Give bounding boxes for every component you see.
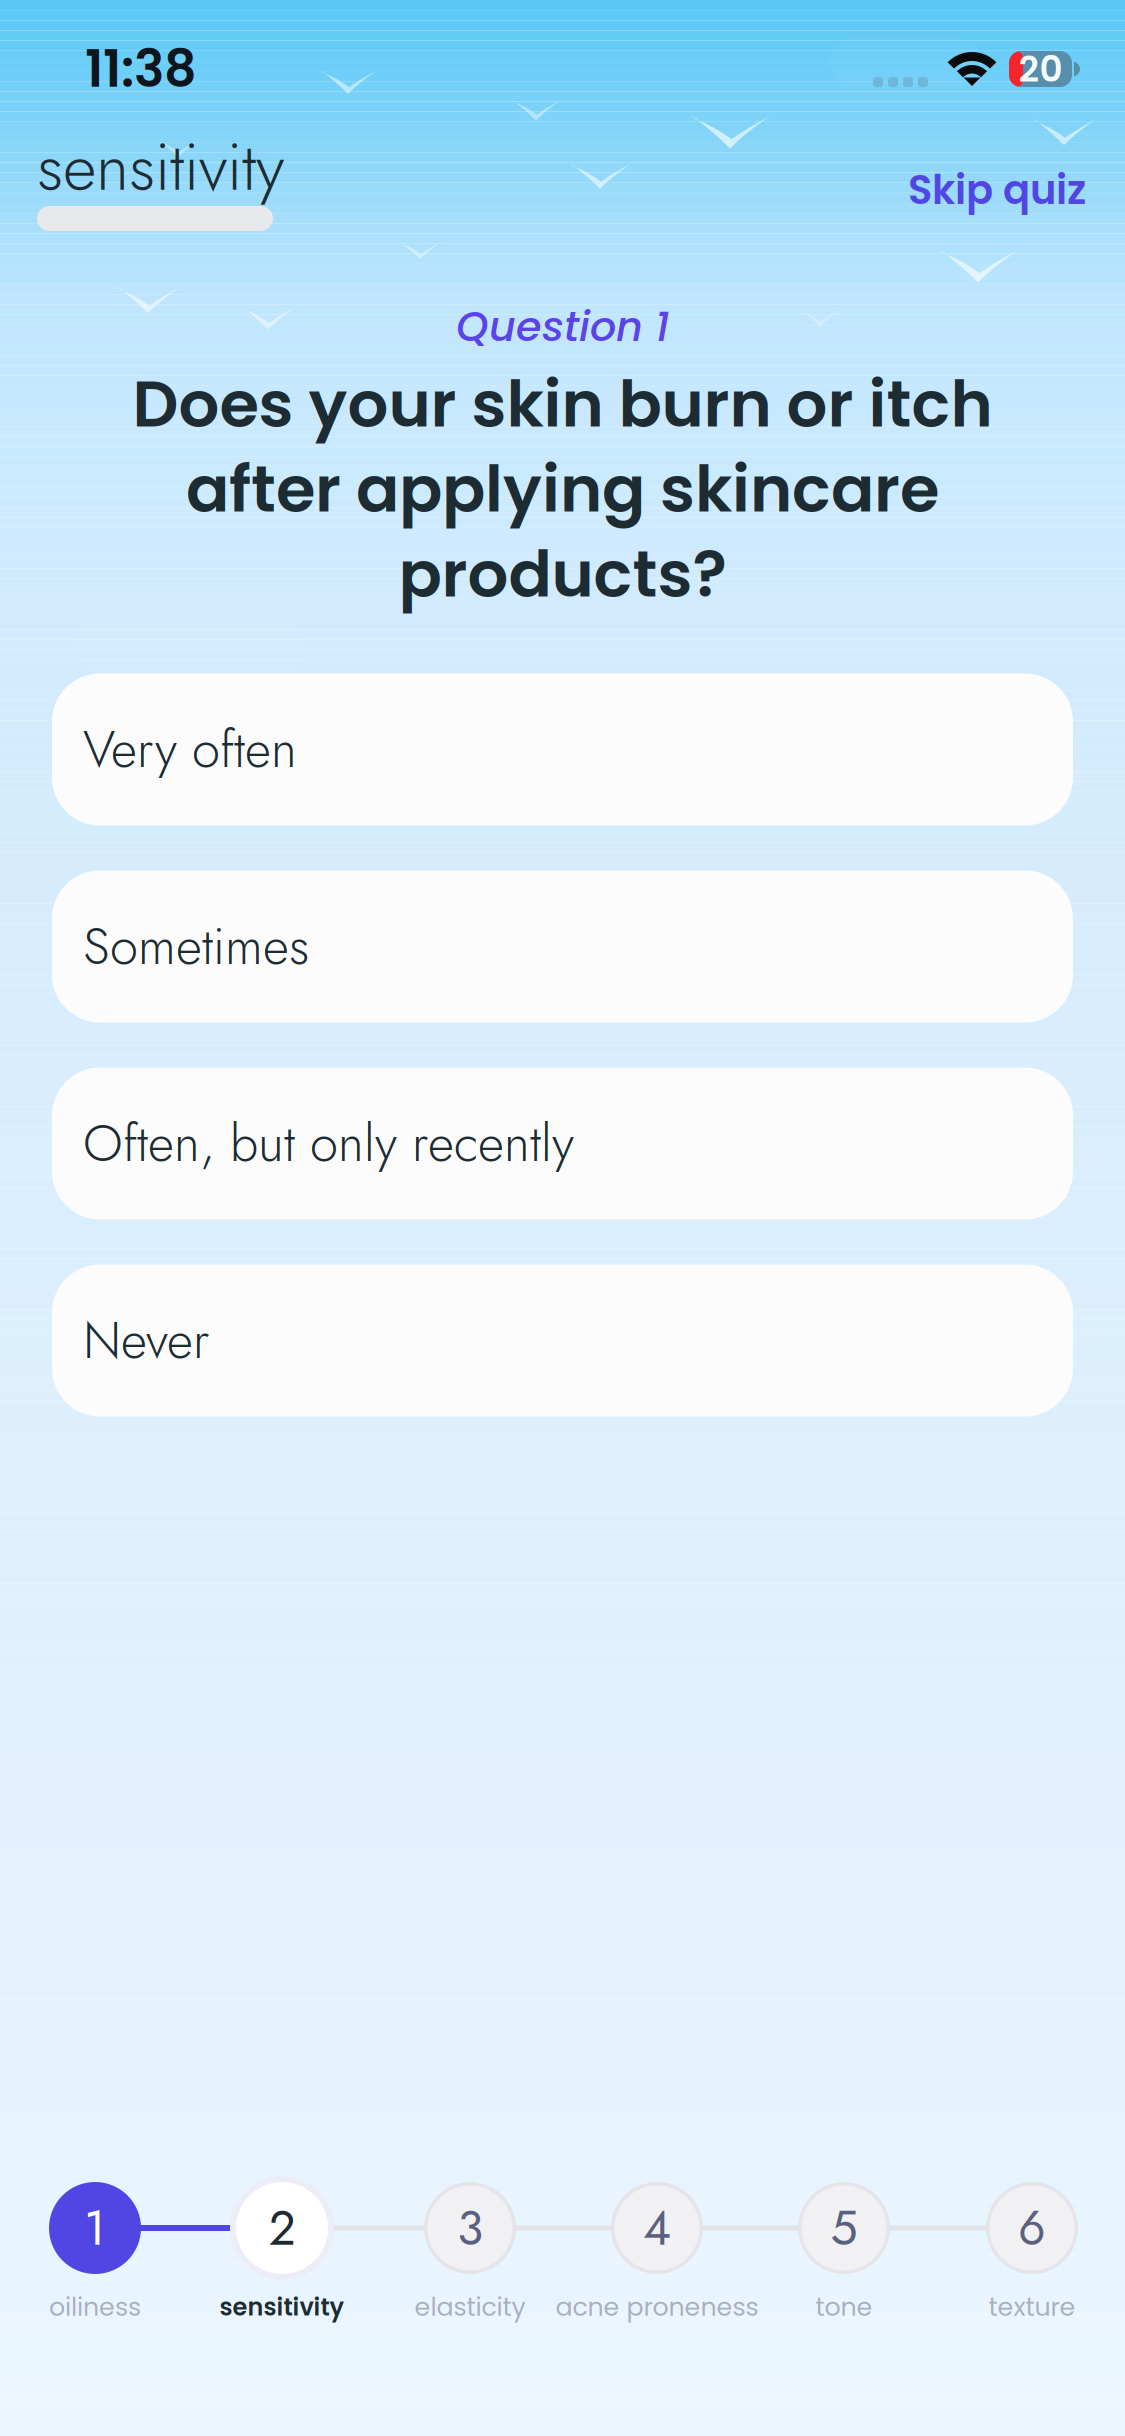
staticText: tone (815, 2289, 872, 2325)
button[interactable]: acne proneness (517, 2283, 797, 2331)
staticText: 3 (457, 2193, 483, 2263)
staticText: oiliness (49, 2289, 141, 2325)
button[interactable]: texture (892, 2283, 1125, 2331)
button[interactable]: sensitivity (142, 2283, 422, 2331)
staticText: 1 (84, 2193, 106, 2263)
staticText: texture (988, 2289, 1075, 2325)
staticText: Skip quiz (908, 162, 1086, 218)
staticText: 4 (643, 2193, 671, 2263)
button[interactable]: Very often (52, 673, 1073, 825)
staticText: 2 (268, 2193, 295, 2263)
staticText: sensitivity (37, 120, 284, 214)
staticText: 5 (830, 2193, 857, 2263)
button[interactable]: Never (52, 1264, 1073, 1416)
staticText: 6 (1018, 2193, 1046, 2263)
button[interactable]: Sometimes (52, 870, 1073, 1022)
staticText: Sometimes (83, 910, 309, 983)
staticText: products? (398, 529, 726, 619)
staticText: Does your skin burn or itch (132, 359, 992, 449)
staticText: Often, but only recently (83, 1107, 574, 1180)
button[interactable]: Often, but only recently (52, 1067, 1073, 1219)
button[interactable]: elasticity (330, 2283, 610, 2331)
button[interactable]: oiliness (0, 2283, 235, 2331)
staticText: Question 1 (456, 298, 669, 355)
staticText: Very often (83, 713, 297, 786)
staticText: 20 (1018, 44, 1062, 94)
staticText: sensitivity (219, 2290, 344, 2324)
staticText: 11:38 (85, 33, 197, 104)
staticText: Never (83, 1304, 209, 1377)
staticText: acne proneness (555, 2289, 758, 2325)
button[interactable]: tone (704, 2283, 984, 2331)
staticText: elasticity (414, 2289, 525, 2325)
button[interactable]: Skip quiz (898, 132, 1096, 236)
staticText: after applying skincare (186, 444, 939, 534)
